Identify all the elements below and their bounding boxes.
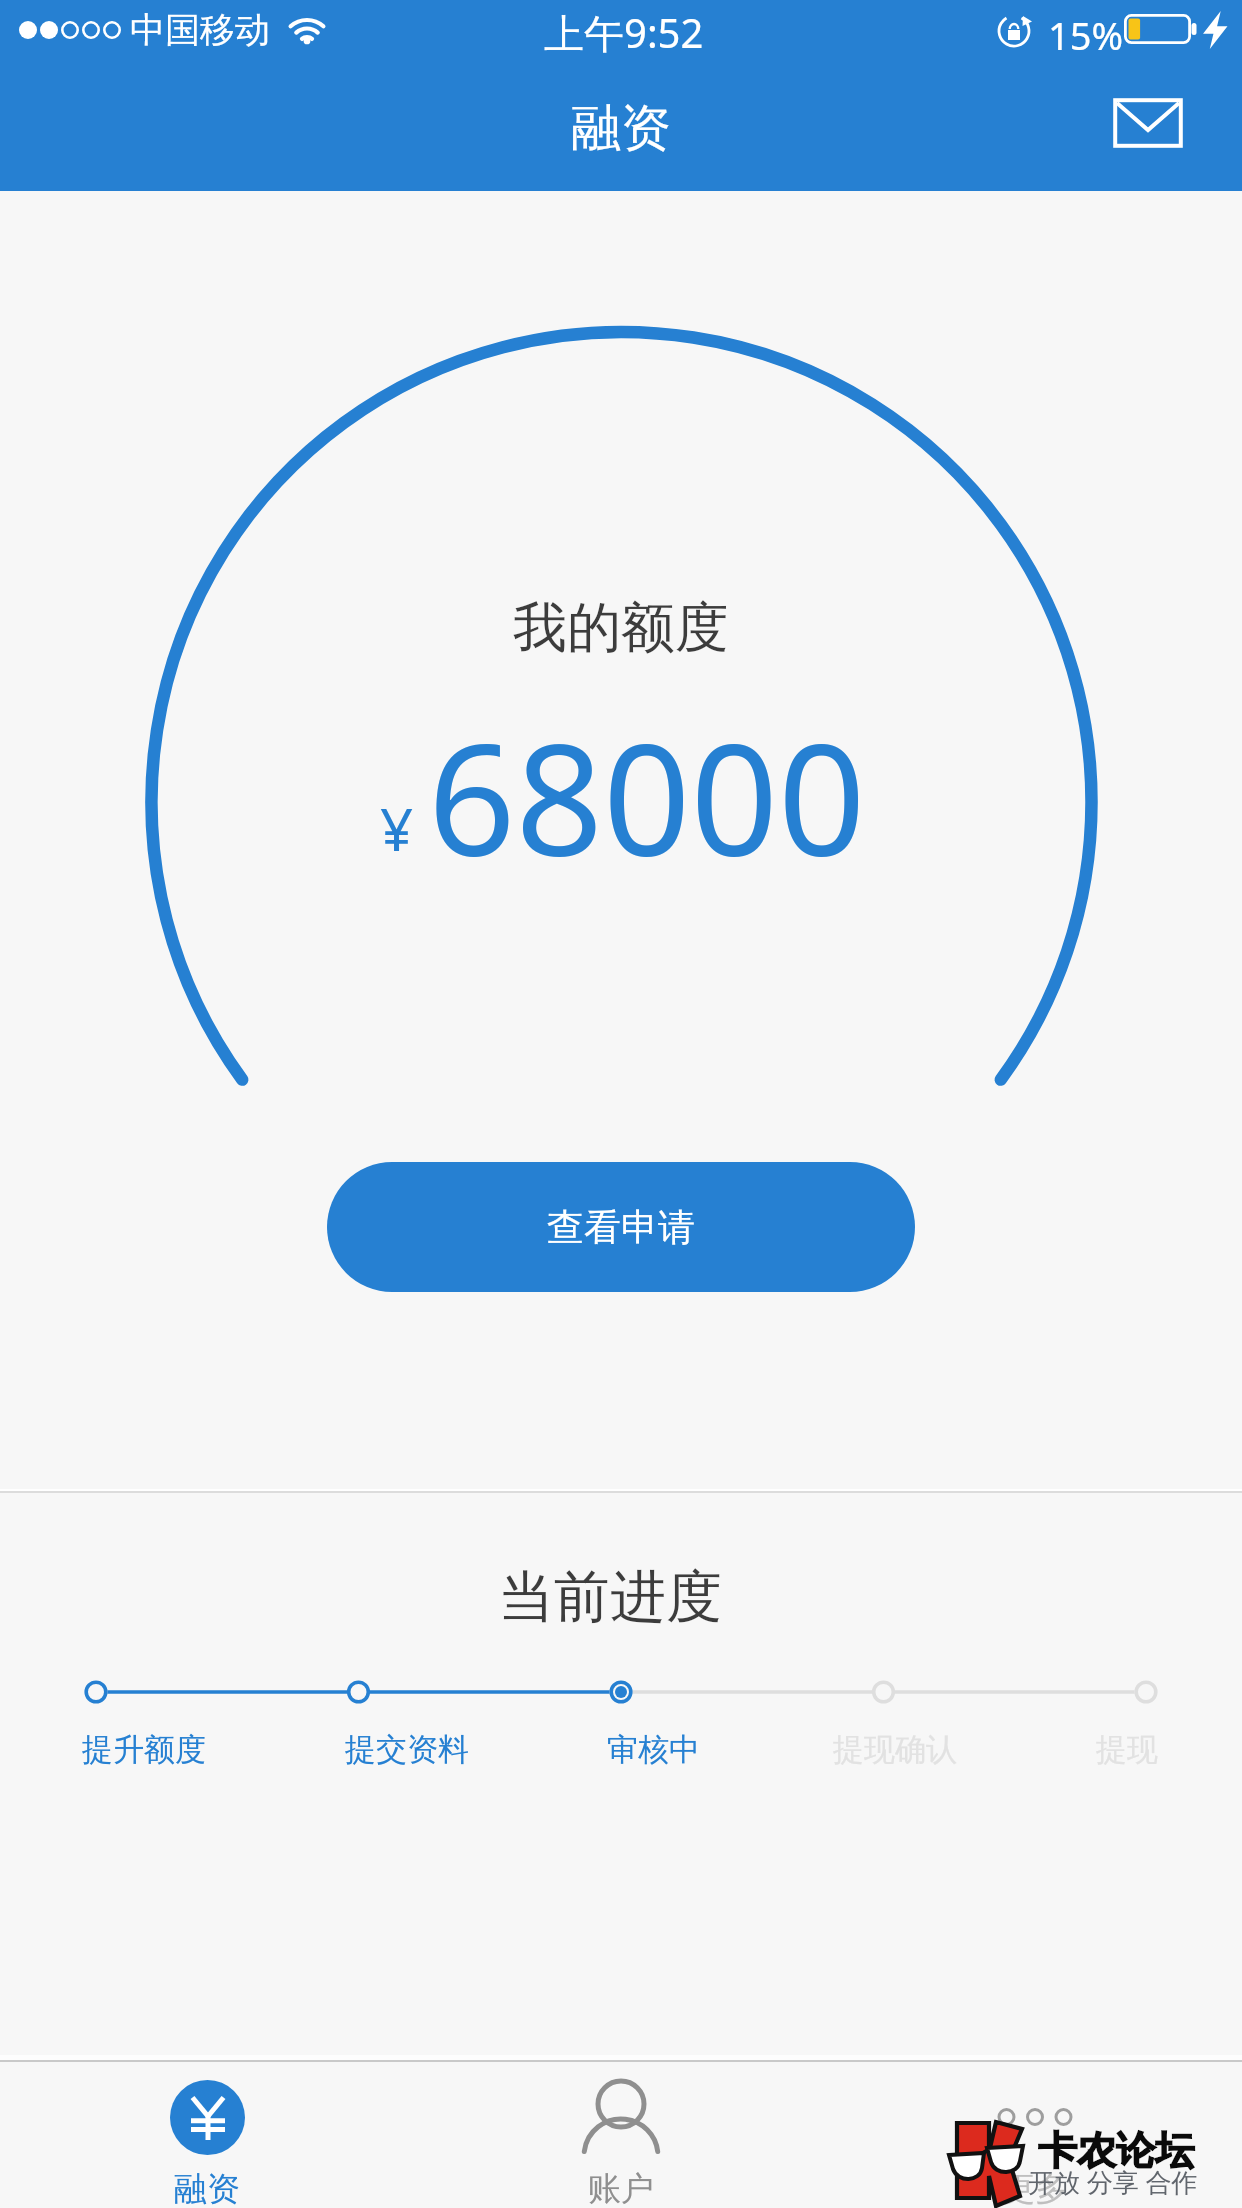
- staticText: 融资: [571, 97, 671, 160]
- staticText: 我的额度: [513, 594, 729, 662]
- button[interactable]: 融资: [0, 2057, 414, 2208]
- staticText: 开放 分享 合作: [1028, 2164, 1198, 2200]
- staticText: 15%: [1048, 9, 1124, 61]
- staticText: 审核中: [607, 1730, 700, 1769]
- staticText: 提现确认: [833, 1730, 957, 1769]
- staticText: 提交资料: [345, 1730, 469, 1769]
- staticText: 中国移动: [130, 8, 270, 52]
- staticText: 融资: [174, 2168, 240, 2208]
- button[interactable]: 账户: [414, 2057, 828, 2208]
- staticText: 卡农论坛: [1038, 2126, 1194, 2175]
- button[interactable]: 更多: [828, 2057, 1242, 2208]
- staticText: ¥: [380, 789, 414, 868]
- staticText: 查看申请: [547, 1204, 695, 1251]
- staticText: 当前进度: [498, 1562, 722, 1633]
- button[interactable]: Messages: [1094, 79, 1202, 167]
- button[interactable]: 查看申请: [327, 1162, 915, 1292]
- staticText: 更多: [1002, 2168, 1068, 2208]
- staticText: 提现: [1096, 1730, 1158, 1769]
- staticText: 账户: [588, 2168, 654, 2208]
- staticText: 68000: [428, 691, 866, 899]
- staticText: 提升额度: [82, 1730, 206, 1769]
- staticText: 上午9:52: [544, 5, 704, 60]
